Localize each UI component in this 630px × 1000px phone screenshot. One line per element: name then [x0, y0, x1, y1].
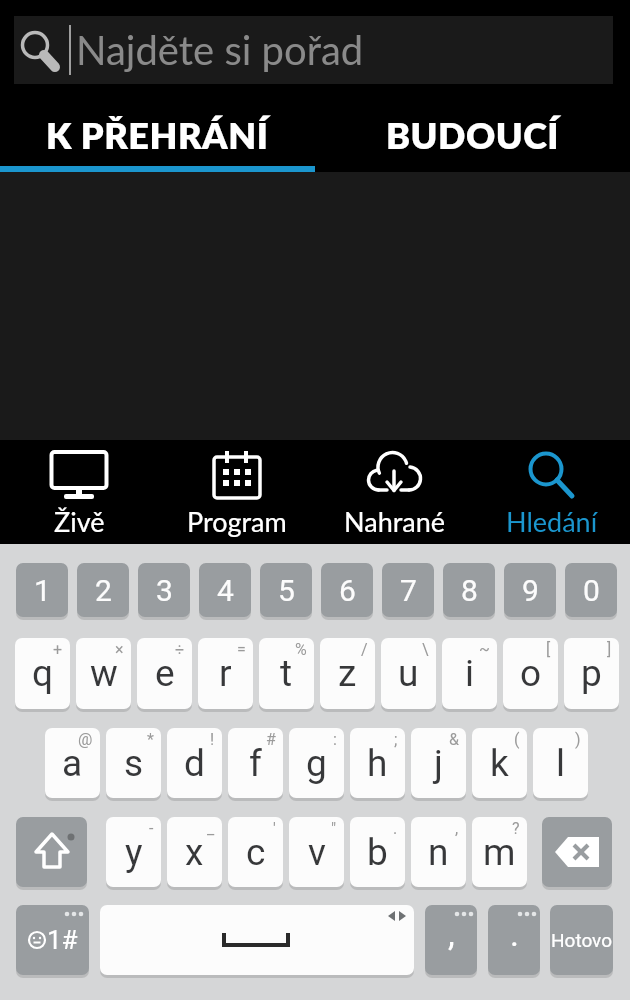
button[interactable]: 0 [565, 563, 617, 617]
staticText: f [249, 742, 262, 785]
button[interactable]: 3 [138, 563, 190, 617]
staticText: Najděte si pořad [76, 26, 364, 74]
button[interactable]: d [167, 728, 222, 798]
button[interactable]: 8 [443, 563, 495, 617]
button[interactable]: 6 [321, 563, 373, 617]
staticText: 1# [47, 925, 78, 955]
staticText: @ [78, 730, 93, 749]
staticText: / [361, 640, 368, 659]
staticText: r [219, 652, 232, 695]
staticText: : [333, 730, 337, 749]
button[interactable]: l [533, 728, 588, 798]
staticText: u [398, 652, 419, 695]
button[interactable]: w [76, 638, 131, 709]
staticText: K PŘEHRÁNÍ [46, 113, 269, 156]
button[interactable]: n [411, 817, 466, 887]
button[interactable]: v [289, 817, 344, 887]
staticText: = [237, 640, 246, 659]
staticText: + [53, 640, 63, 659]
staticText: Živě [54, 505, 105, 537]
button[interactable]: K PŘEHRÁNÍ [0, 96, 315, 172]
staticText: 0 [583, 573, 600, 608]
staticText: p [581, 652, 602, 695]
button[interactable]: x [167, 817, 222, 887]
staticText: × [115, 640, 124, 659]
button[interactable]: 4 [199, 563, 251, 617]
staticText: c [246, 831, 266, 874]
staticText: 7 [400, 573, 417, 608]
button[interactable]: g [289, 728, 344, 798]
staticText: 3 [156, 573, 173, 608]
staticText: \ [422, 640, 429, 659]
button[interactable]: 1 [16, 563, 68, 617]
staticText: # [266, 730, 276, 749]
button[interactable]: 2 [77, 563, 129, 617]
button[interactable]: b [350, 817, 405, 887]
staticText: e [155, 652, 175, 695]
staticText: 4 [217, 573, 234, 608]
button[interactable]: 7 [382, 563, 434, 617]
button[interactable]: p [564, 638, 619, 709]
staticText: y [125, 831, 143, 874]
button[interactable]: . [488, 905, 540, 975]
staticText: t [280, 652, 293, 695]
staticText: v [308, 831, 326, 874]
staticText: & [449, 730, 459, 749]
staticText: z [338, 652, 357, 695]
button[interactable]: a [45, 728, 100, 798]
button[interactable]: Hotovo [550, 905, 613, 975]
button[interactable]: y [106, 817, 161, 887]
staticText: ( [514, 730, 520, 749]
staticText: [ [546, 640, 551, 659]
button[interactable]: z [320, 638, 375, 709]
button[interactable] [542, 817, 612, 887]
button[interactable] [16, 817, 87, 887]
button[interactable]: , [425, 905, 477, 975]
button[interactable] [100, 905, 414, 975]
staticText: Nahrané [344, 505, 446, 537]
button[interactable]: Nahrané [316, 440, 474, 544]
staticText: Program [187, 505, 287, 537]
staticText: BUDOUCÍ [386, 113, 560, 156]
button[interactable]: BUDOUCÍ [315, 96, 630, 172]
staticText: Hotovo [551, 929, 613, 951]
staticText: ; [394, 730, 398, 749]
staticText: 9 [522, 573, 539, 608]
staticText: 5 [278, 573, 295, 608]
button[interactable]: c [228, 817, 283, 887]
staticText: ? [512, 819, 520, 838]
button[interactable]: t [259, 638, 314, 709]
staticText: ! [210, 730, 215, 749]
button[interactable]: i [442, 638, 497, 709]
button[interactable]: j [411, 728, 466, 798]
staticText: 2 [95, 573, 112, 608]
button[interactable]: 5 [260, 563, 312, 617]
button[interactable]: 9 [504, 563, 556, 617]
staticText: i [465, 652, 474, 695]
button[interactable]: Program [158, 440, 316, 544]
staticText: b [367, 831, 388, 874]
button[interactable]: h [350, 728, 405, 798]
staticText: , [455, 819, 459, 838]
staticText: s [124, 742, 144, 785]
staticText: 6 [339, 573, 356, 608]
button[interactable]: f [228, 728, 283, 798]
staticText: l [556, 742, 565, 785]
button[interactable]: 1# [16, 905, 89, 975]
button[interactable]: m [472, 817, 527, 887]
staticText: " [331, 819, 337, 838]
button[interactable]: o [503, 638, 558, 709]
button[interactable]: Hledání [474, 440, 630, 544]
staticText: % [295, 640, 307, 659]
button[interactable]: u [381, 638, 436, 709]
button[interactable]: r [198, 638, 253, 709]
staticText: . [510, 914, 519, 954]
button[interactable]: Najděte si pořad [14, 16, 613, 84]
button[interactable]: s [106, 728, 161, 798]
button[interactable]: q [15, 638, 70, 709]
button[interactable]: k [472, 728, 527, 798]
staticText: - [149, 819, 154, 838]
staticText: k [490, 742, 509, 785]
button[interactable]: e [137, 638, 192, 709]
button[interactable]: Živě [0, 440, 158, 544]
